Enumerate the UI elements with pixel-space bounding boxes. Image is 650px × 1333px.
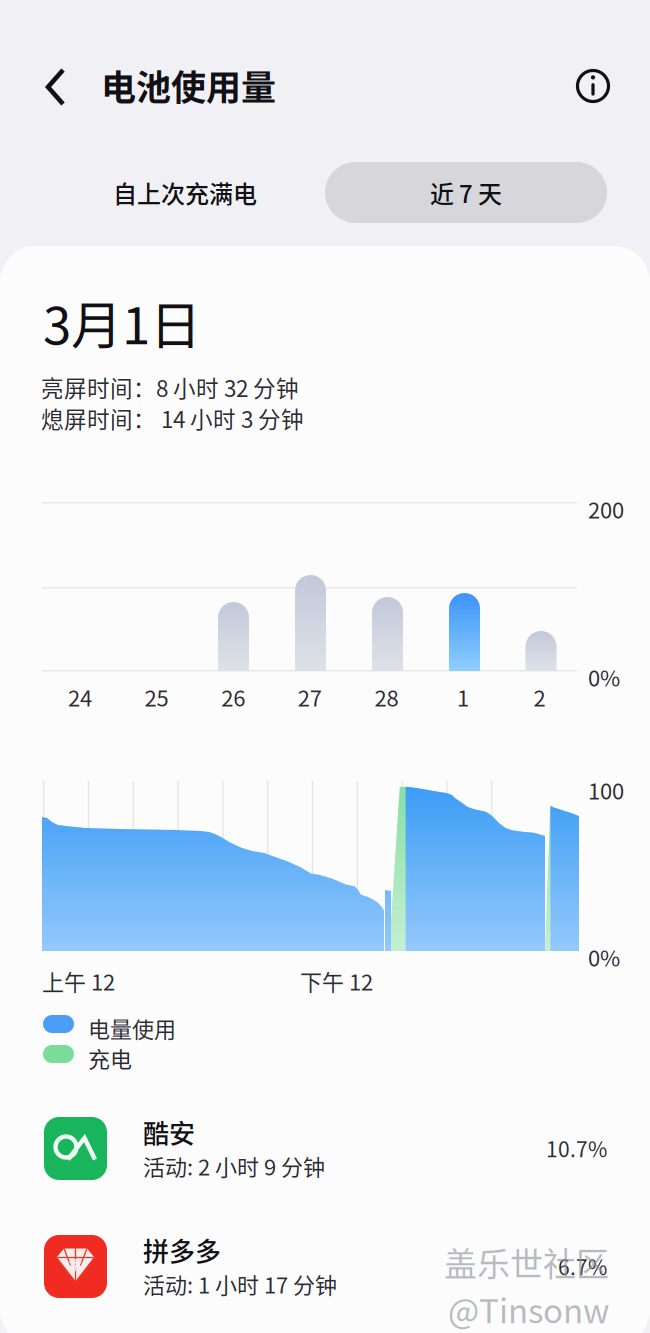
button[interactable]: 拼	[0, 1224, 650, 1324]
staticText: 充电	[88, 1042, 132, 1074]
staticText: 自上次充满电	[113, 175, 257, 210]
staticText: 活动: 1 小时 17 分钟	[143, 1268, 337, 1300]
staticText: 上午 12	[42, 965, 115, 997]
staticText: 1	[457, 681, 469, 713]
staticText: 拼多多	[143, 1231, 221, 1269]
staticText: 10.7%	[546, 1133, 607, 1163]
staticText: 200	[588, 493, 624, 525]
staticText: 拼	[69, 1255, 82, 1274]
staticText: 3月1日	[43, 285, 201, 359]
button[interactable]: 酷安	[0, 1106, 650, 1206]
staticText: 26	[221, 681, 245, 713]
button[interactable]: 近 7 天	[325, 162, 607, 223]
staticText: 盖乐世社区	[444, 1238, 609, 1286]
staticText: 24	[68, 681, 92, 713]
staticText: @Tinsonw	[448, 1285, 609, 1333]
staticText: 下午 12	[300, 965, 373, 997]
button[interactable]: Info	[563, 56, 623, 116]
staticText: 亮屏时间：8 小时 32 分钟	[41, 371, 299, 404]
staticText: 0%	[588, 941, 620, 973]
staticText: 100	[588, 774, 624, 806]
staticText: 6.7%	[558, 1251, 607, 1281]
staticText: 电池使用量	[101, 60, 276, 111]
staticText: 0%	[588, 661, 620, 693]
staticText: 活动: 2 小时 9 分钟	[143, 1150, 325, 1182]
staticText: 熄屏时间： 14 小时 3 分钟	[41, 402, 304, 435]
staticText: 2	[534, 681, 546, 713]
staticText: 25	[145, 681, 169, 713]
staticText: 近 7 天	[430, 175, 502, 210]
staticText: 电量使用	[88, 1012, 176, 1044]
staticText: 28	[374, 681, 398, 713]
button[interactable]: Back	[29, 47, 85, 127]
staticText: 27	[298, 681, 322, 713]
staticText: 酷安	[143, 1113, 195, 1151]
button[interactable]: 自上次充满电	[44, 162, 326, 223]
